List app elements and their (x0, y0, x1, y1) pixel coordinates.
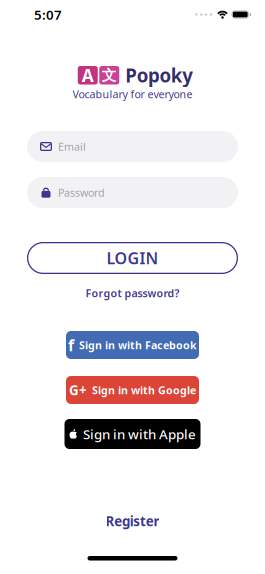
staticText: 文 (102, 66, 117, 84)
button[interactable]: Forgot password? (85, 288, 179, 298)
staticText: A (82, 64, 94, 87)
staticText: f (68, 334, 74, 356)
staticText: 5:07 (34, 6, 62, 23)
button[interactable]: Register (105, 515, 159, 527)
staticText: Popoky (125, 63, 193, 88)
staticText: Sign in with Facebook (79, 338, 197, 352)
staticText: Email (58, 139, 86, 154)
staticText: Register (105, 512, 159, 530)
button[interactable]: Email (27, 131, 238, 162)
button[interactable]: LOGIN (27, 242, 238, 274)
staticText: Forgot password? (85, 286, 179, 300)
staticText: G+ (69, 381, 87, 399)
button[interactable]: f (66, 331, 199, 359)
button[interactable]: G+ (66, 376, 199, 404)
button[interactable]: Sign in with Apple (64, 419, 200, 449)
staticText: Password (58, 185, 105, 200)
staticText: Vocabulary for everyone (72, 87, 192, 101)
button[interactable]: Password (27, 177, 238, 208)
staticText: Sign in with Google (92, 383, 196, 397)
staticText: LOGIN (106, 247, 158, 269)
staticText: Sign in with Apple (83, 425, 196, 443)
